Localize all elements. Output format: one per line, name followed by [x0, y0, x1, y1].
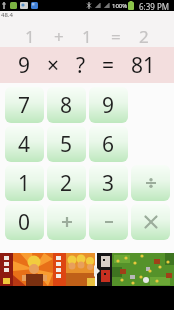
button[interactable]: 2 [47, 165, 86, 201]
staticText: 100% [112, 2, 128, 10]
button[interactable] [47, 204, 86, 240]
button[interactable]: 8 [47, 87, 86, 123]
staticText: 1 [25, 25, 35, 48]
button[interactable]: 4 [5, 126, 44, 162]
staticText: 2 [139, 25, 149, 48]
staticText: 2 [60, 169, 73, 198]
staticText: 6:39 PM [139, 1, 170, 12]
button[interactable] [131, 204, 170, 240]
staticText: 4 [18, 130, 31, 159]
button[interactable] [0, 253, 174, 286]
button[interactable]: 1 [5, 165, 44, 201]
staticText: + [54, 25, 64, 48]
staticText: × [47, 51, 60, 80]
staticText: 3 [102, 169, 115, 198]
staticText: 0 [18, 208, 31, 237]
button[interactable]: 9 [89, 87, 128, 123]
button[interactable]: 3 [89, 165, 128, 201]
staticText: 9 [18, 51, 31, 80]
staticText: 8 [60, 91, 73, 120]
staticText: 1 [18, 169, 31, 198]
staticText: 9 [102, 91, 115, 120]
button[interactable]: 5 [47, 126, 86, 162]
staticText: 1 [82, 25, 92, 48]
staticText: 7 [18, 91, 31, 120]
button[interactable]: 7 [5, 87, 44, 123]
staticText: ? [76, 51, 86, 80]
staticText: 48.4 [1, 11, 13, 19]
button[interactable]: 6 [89, 126, 128, 162]
button[interactable] [89, 204, 128, 240]
staticText: = [111, 25, 121, 48]
staticText: 81 [131, 51, 156, 80]
staticText: 5 [60, 130, 73, 159]
button[interactable]: 0 [5, 204, 44, 240]
staticText: = [102, 51, 115, 80]
button[interactable] [131, 165, 170, 201]
staticText: 6 [102, 130, 115, 159]
